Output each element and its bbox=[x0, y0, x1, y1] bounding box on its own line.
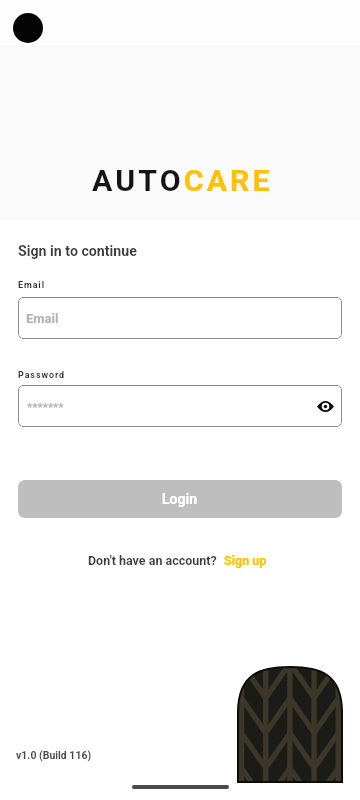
staticText: Email bbox=[26, 311, 59, 326]
button[interactable]: Show password bbox=[310, 391, 340, 421]
staticText: Sign up bbox=[224, 553, 267, 568]
staticText: v1.0 (Build 116) bbox=[16, 749, 92, 761]
staticText: Sign in to continue bbox=[18, 243, 137, 260]
staticText: Login bbox=[162, 491, 198, 507]
button[interactable]: Sign up bbox=[224, 553, 267, 568]
button[interactable]: ******* bbox=[18, 385, 342, 427]
staticText: AUTOCARE bbox=[92, 163, 273, 199]
staticText: Email bbox=[18, 280, 45, 291]
staticText: Don't have an account? bbox=[88, 553, 217, 568]
staticText: ******* bbox=[27, 400, 64, 413]
button[interactable]: Email bbox=[18, 297, 342, 339]
staticText: Password bbox=[18, 370, 65, 381]
button[interactable]: Login bbox=[18, 480, 342, 518]
